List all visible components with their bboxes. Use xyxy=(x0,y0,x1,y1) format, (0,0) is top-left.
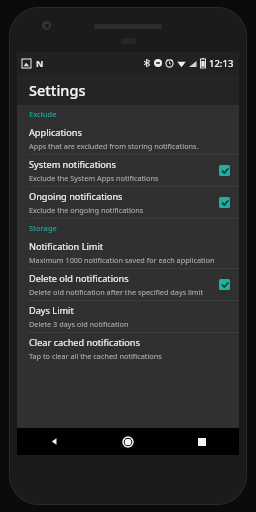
button[interactable]: Recent apps xyxy=(165,428,239,455)
staticText: Delete old notification after the specif… xyxy=(29,287,204,297)
staticText: Exclude the System Apps notifications xyxy=(29,173,159,183)
staticText: Days Limit xyxy=(29,304,74,317)
staticText: Apps that are excluded from storing noti… xyxy=(29,141,199,151)
staticText: Delete old notifications xyxy=(29,272,129,285)
staticText: Storage xyxy=(29,223,57,233)
button[interactable]: Home xyxy=(91,428,165,455)
staticText: Tap to clear all the cached notification… xyxy=(29,351,162,361)
button[interactable]: Days Limit xyxy=(17,301,239,332)
staticText: Settings xyxy=(29,80,86,100)
button[interactable]: Toggle setting xyxy=(219,197,230,208)
button[interactable]: Back xyxy=(17,428,91,455)
button[interactable]: Delete old notifications xyxy=(17,269,239,300)
button[interactable]: Ongoing notifications xyxy=(17,187,239,218)
staticText: Ongoing notifications xyxy=(29,190,123,203)
button[interactable]: System notifications xyxy=(17,155,239,186)
staticText: Maximum 1000 notification saved for each… xyxy=(29,255,215,265)
staticText: Notification Limit xyxy=(29,240,104,253)
staticText: Applications xyxy=(29,126,82,139)
button[interactable]: Toggle setting xyxy=(219,279,230,290)
staticText: N xyxy=(36,57,44,69)
staticText: Exclude the ongoing notifications xyxy=(29,205,144,215)
staticText: Exclude xyxy=(29,109,57,119)
button[interactable]: Applications xyxy=(17,123,239,154)
button[interactable]: Notification Limit xyxy=(17,237,239,268)
button[interactable]: Clear cached notifications xyxy=(17,333,239,364)
button[interactable]: Toggle setting xyxy=(219,165,230,176)
staticText: Clear cached notifications xyxy=(29,336,140,349)
staticText: 12:13 xyxy=(209,57,234,70)
staticText: Delete 3 days old notification xyxy=(29,319,129,329)
staticText: System notifications xyxy=(29,158,116,171)
